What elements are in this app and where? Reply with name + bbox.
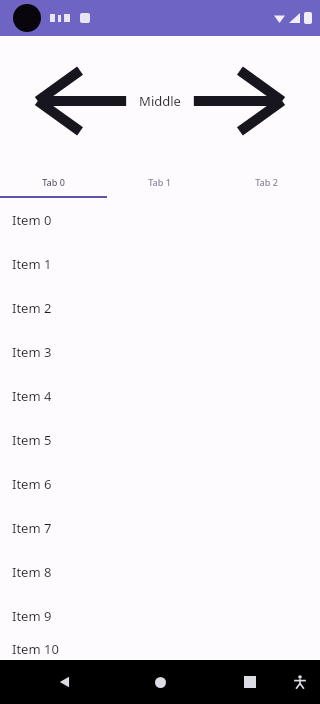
staticText: Item 1	[12, 255, 52, 273]
button[interactable]: Item 1	[0, 242, 320, 286]
button[interactable]: Recent apps	[238, 670, 262, 694]
staticText: Tab 1	[148, 176, 171, 188]
button[interactable]: Item 9	[0, 594, 320, 638]
button[interactable]: Tab 0	[0, 166, 106, 198]
staticText: Item 7	[12, 519, 52, 537]
staticText: Item 5	[12, 431, 52, 449]
staticText: Item 3	[12, 343, 52, 361]
staticText: Item 2	[12, 299, 52, 317]
button[interactable]: Item 10	[0, 638, 320, 660]
button[interactable]: Next	[190, 63, 286, 139]
button[interactable]: Tab 1	[106, 166, 213, 198]
button[interactable]: Back	[52, 670, 76, 694]
button[interactable]: Home	[148, 670, 172, 694]
button[interactable]: Tab 2	[213, 166, 320, 198]
button[interactable]: Item 3	[0, 330, 320, 374]
button[interactable]: Previous	[34, 63, 130, 139]
staticText: Item 6	[12, 475, 52, 493]
button[interactable]: Item 0	[0, 198, 320, 242]
staticText: Item 10	[12, 640, 59, 658]
button[interactable]: Item 4	[0, 374, 320, 418]
staticText: Item 0	[12, 211, 52, 229]
button[interactable]: Item 2	[0, 286, 320, 330]
button[interactable]: Item 6	[0, 462, 320, 506]
staticText: Item 4	[12, 387, 52, 405]
staticText: Middle	[139, 92, 181, 110]
staticText: Tab 0	[42, 176, 65, 188]
staticText: Item 8	[12, 563, 52, 581]
staticText: Tab 2	[255, 176, 278, 188]
button[interactable]: Item 8	[0, 550, 320, 594]
staticText: Item 9	[12, 607, 52, 625]
button[interactable]: Item 5	[0, 418, 320, 462]
button[interactable]: Item 7	[0, 506, 320, 550]
button[interactable]: Accessibility	[288, 670, 312, 694]
